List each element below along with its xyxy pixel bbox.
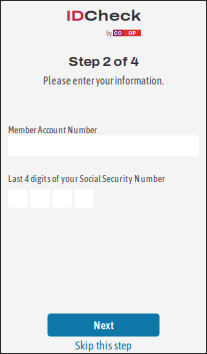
staticText: Last 4 digits of your Social Security Nu… — [8, 173, 165, 184]
staticText: Skip this step — [75, 339, 132, 352]
staticText: by — [106, 29, 112, 37]
button[interactable]: Skip this step — [65, 338, 142, 353]
button[interactable]: Next — [47, 314, 159, 337]
staticText: Please enter your information. — [43, 75, 164, 87]
staticText: Member Account Number — [8, 125, 97, 135]
staticText: Step 2 of 4 — [68, 55, 138, 69]
staticText: Next — [93, 319, 113, 332]
staticText: OP — [128, 30, 135, 36]
staticText: ID — [66, 8, 84, 24]
staticText: Check — [84, 8, 141, 24]
staticText: CO — [114, 30, 122, 36]
